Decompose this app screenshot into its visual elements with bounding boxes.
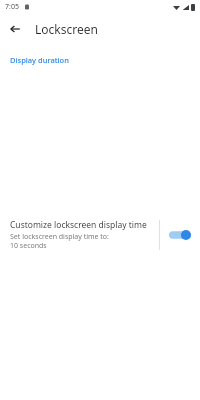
staticText: Display duration (10, 55, 200, 65)
staticText: Lockscreen (35, 21, 98, 37)
staticText: Customize lockscreen display time (10, 219, 147, 231)
button[interactable]: Back (0, 14, 30, 44)
button[interactable]: On (160, 74, 200, 395)
staticText: 7:05 (5, 2, 19, 12)
button[interactable]: Customize lockscreen display time (0, 69, 200, 400)
staticText: Set lockscreen display time to: 10 secon… (10, 232, 109, 250)
